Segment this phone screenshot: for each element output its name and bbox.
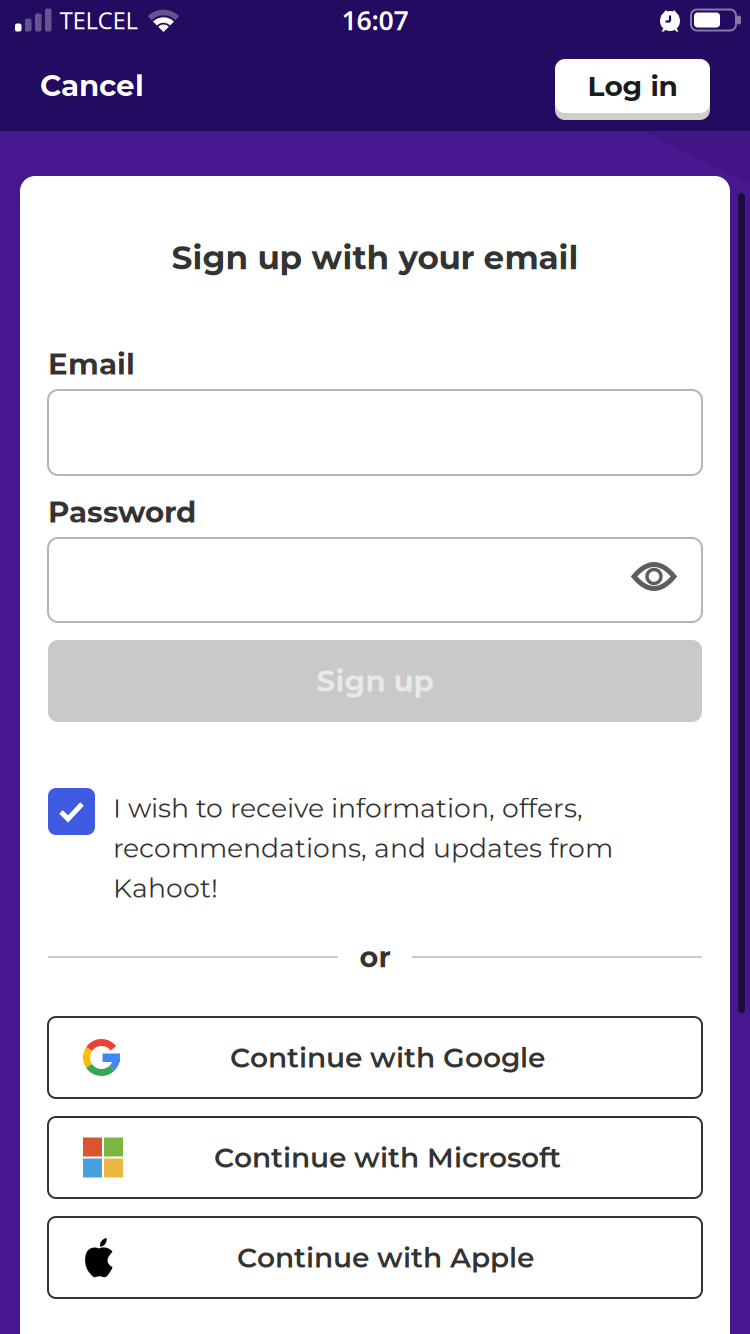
staticText: recommendations, and updates from	[113, 832, 613, 864]
staticText: I wish to receive information, offers,	[113, 792, 583, 824]
button[interactable]: Email	[48, 390, 702, 475]
button[interactable]: Continue with Apple	[48, 1217, 702, 1298]
staticText: TELCEL	[59, 4, 138, 36]
staticText: Continue with Google	[230, 1040, 545, 1074]
button[interactable]: Sign up	[48, 640, 702, 722]
button[interactable]: I wish to receive information, offers, r…	[48, 788, 95, 835]
button[interactable]: Show password	[632, 561, 702, 598]
staticText: Kahoot!	[113, 872, 218, 904]
staticText: Continue with Apple	[237, 1240, 534, 1274]
button[interactable]: Continue with Google	[48, 1017, 702, 1098]
button[interactable]: Continue with Microsoft	[48, 1117, 702, 1198]
staticText: Sign up with your email	[171, 238, 578, 277]
staticText: Log in	[587, 69, 677, 103]
staticText: or	[359, 939, 390, 974]
button[interactable]: Cancel	[40, 68, 144, 103]
staticText: Continue with Microsoft	[214, 1140, 561, 1174]
button[interactable]: Log in	[555, 59, 710, 120]
staticText: 16:07	[341, 2, 408, 38]
staticText: Password	[48, 494, 196, 530]
staticText: Email	[48, 346, 135, 382]
staticText: Cancel	[40, 68, 144, 103]
staticText: Sign up	[316, 663, 433, 699]
